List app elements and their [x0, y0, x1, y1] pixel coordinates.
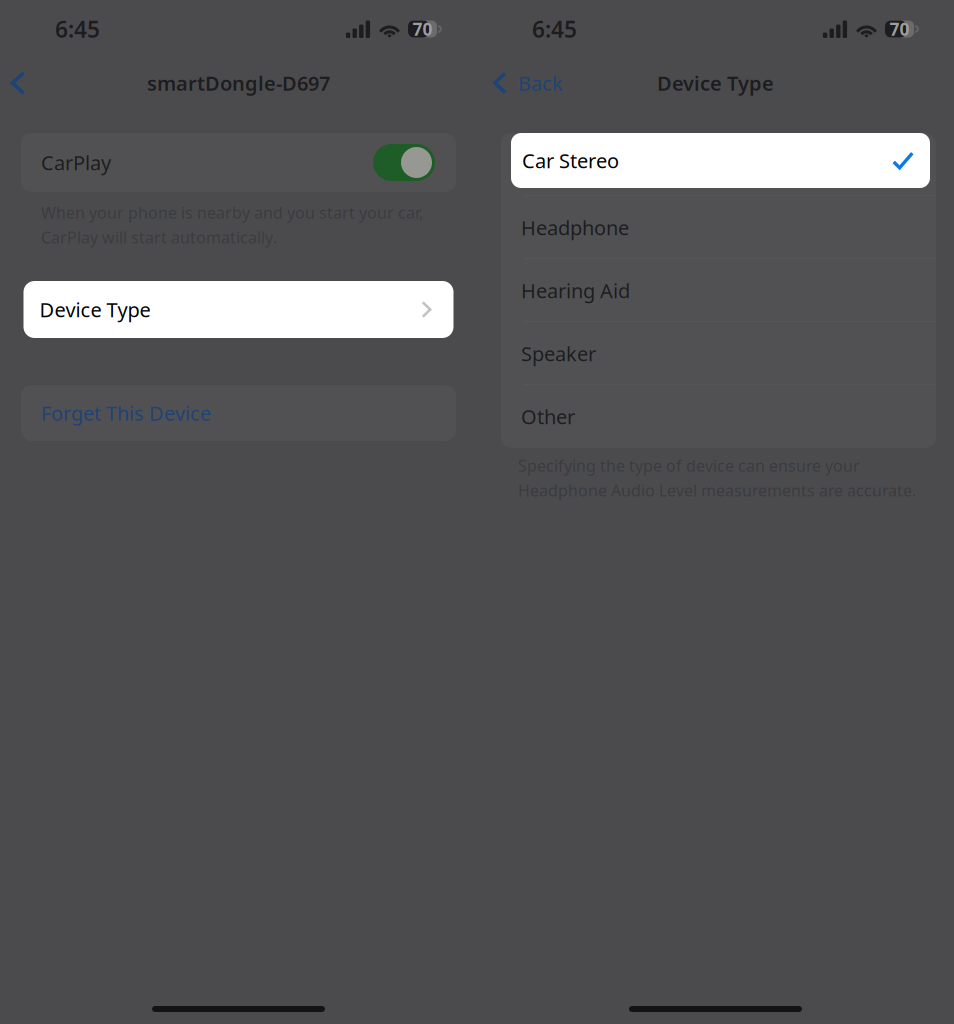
button[interactable]: Headphone	[501, 196, 936, 259]
staticText: Back	[518, 70, 563, 96]
staticText: Headphone	[521, 214, 629, 241]
button[interactable]: Forget This Device	[21, 385, 456, 441]
button[interactable]: Car Stereo	[501, 133, 936, 196]
button[interactable]: Back	[0, 58, 36, 108]
staticText: Other	[521, 403, 575, 430]
staticText: When your phone is nearby and you start …	[41, 202, 423, 223]
staticText: Car Stereo	[521, 151, 618, 178]
staticText: Headphone Audio Level measurements are a…	[518, 480, 916, 501]
button[interactable]: Speaker	[501, 322, 936, 385]
staticText: 6:45	[532, 14, 577, 44]
staticText: Hearing Aid	[521, 277, 630, 304]
button[interactable]: Other	[501, 385, 936, 448]
staticText: CarPlay	[41, 149, 111, 176]
staticText: Forget This Device	[41, 400, 211, 426]
staticText: 70	[412, 17, 432, 40]
staticText: Device Type	[39, 296, 150, 323]
staticText: 70	[889, 17, 909, 40]
button[interactable]: Device Type	[23, 281, 453, 338]
staticText: 6:45	[55, 14, 100, 44]
button[interactable]: Car Stereo	[511, 133, 930, 188]
button[interactable]: Hearing Aid	[501, 259, 936, 322]
staticText: Car Stereo	[522, 147, 619, 174]
staticText: Specifying the type of device can ensure…	[518, 455, 860, 476]
staticText: CarPlay will start automatically.	[41, 227, 277, 248]
staticText: Device Type	[657, 70, 774, 96]
button[interactable]: Back	[477, 58, 573, 108]
staticText: Speaker	[521, 340, 596, 367]
staticText: smartDongle-D697	[147, 70, 330, 96]
